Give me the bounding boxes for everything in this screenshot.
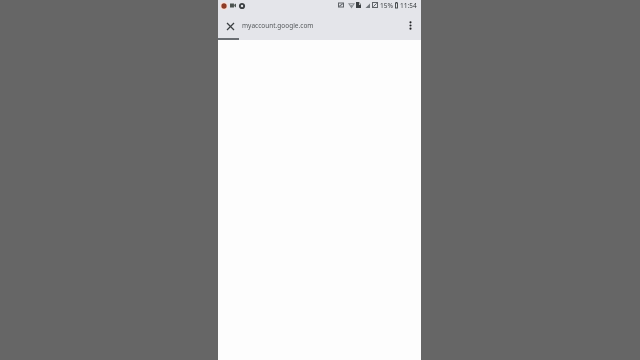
button[interactable]: myaccount.google.com <box>242 18 330 32</box>
staticText: 15% <box>380 1 393 10</box>
button[interactable]: Close <box>218 14 242 38</box>
staticText: 11:54 <box>400 1 417 10</box>
staticText: myaccount.google.com <box>242 21 314 30</box>
button[interactable]: More options <box>398 13 422 37</box>
